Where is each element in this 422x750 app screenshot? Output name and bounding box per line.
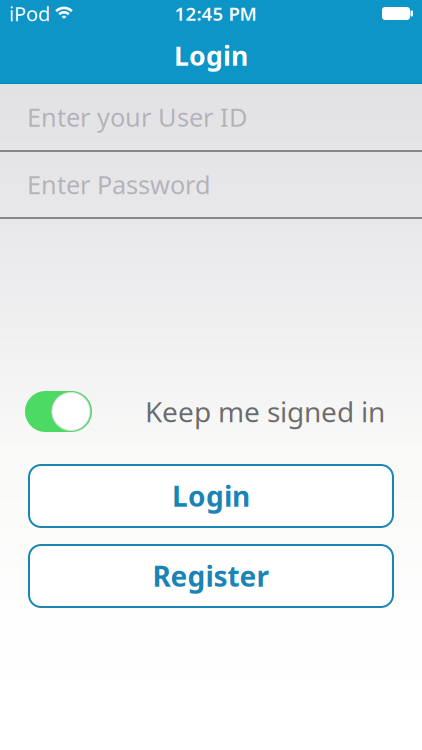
staticText: Login: [172, 477, 250, 515]
staticText: Enter your User ID: [27, 100, 247, 134]
button[interactable]: [25, 391, 92, 432]
staticText: Keep me signed in: [145, 393, 385, 430]
staticText: Login: [174, 38, 248, 73]
staticText: Register: [152, 557, 269, 595]
staticText: iPod: [9, 0, 50, 27]
staticText: Enter Password: [27, 168, 211, 201]
button[interactable]: Enter Password: [0, 152, 422, 217]
staticText: 12:45 PM: [174, 1, 256, 26]
button[interactable]: Register: [28, 544, 394, 608]
button[interactable]: Login: [28, 464, 394, 528]
button[interactable]: Enter your User ID: [0, 84, 422, 150]
